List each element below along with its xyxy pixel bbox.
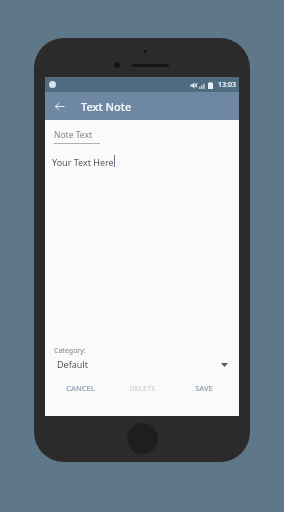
staticText: Category:	[54, 346, 86, 356]
button[interactable]: CANCEL	[49, 379, 111, 396]
staticText: Text Note	[81, 99, 132, 114]
button[interactable]: DELETE	[111, 379, 173, 396]
other: Open category dropdown	[221, 362, 228, 367]
staticText: Default	[57, 358, 88, 370]
button[interactable]: Note Text	[54, 129, 230, 144]
staticText: 13:03	[218, 80, 236, 90]
button[interactable]: Your Text Here	[52, 156, 232, 346]
button[interactable]: SAVE	[173, 379, 235, 396]
button[interactable]: Back	[45, 92, 73, 120]
button[interactable]: Default	[54, 358, 230, 370]
staticText: Your Text Here	[52, 156, 114, 168]
staticText: DELETE	[129, 383, 156, 393]
staticText: SAVE	[195, 383, 213, 393]
staticText: Note Text	[54, 129, 92, 141]
staticText: CANCEL	[66, 383, 95, 393]
